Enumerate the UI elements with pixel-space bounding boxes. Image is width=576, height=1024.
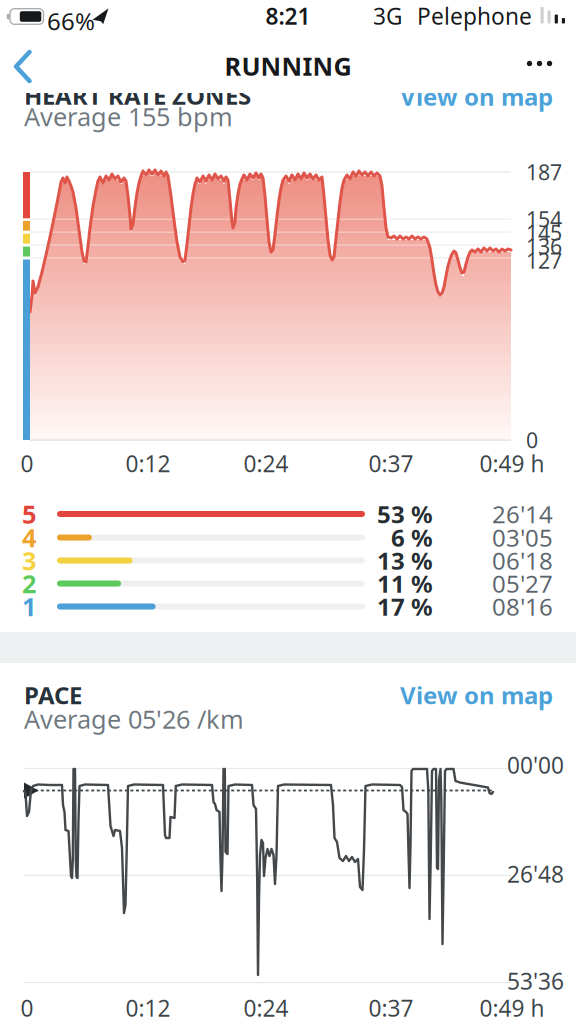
staticText: 26'48: [507, 859, 564, 889]
staticText: View on map: [400, 679, 553, 711]
staticText: 0: [526, 426, 538, 454]
staticText: 06'18: [492, 545, 553, 576]
staticText: 05'27: [492, 568, 553, 599]
staticText: 0:37: [368, 993, 413, 1023]
staticText: Average 155 bpm: [24, 100, 233, 133]
staticText: 4: [22, 521, 36, 554]
staticText: 154: [526, 205, 562, 233]
staticText: 13 %: [377, 545, 433, 576]
staticText: 0: [20, 993, 33, 1023]
staticText: 66%: [47, 5, 95, 37]
staticText: 3G: [373, 1, 403, 31]
staticText: 5: [22, 497, 36, 531]
staticText: 0:12: [125, 993, 170, 1023]
staticText: 53 %: [377, 498, 433, 530]
staticText: Average 05'26 /km: [24, 702, 244, 736]
staticText: 6 %: [391, 522, 433, 553]
staticText: 0:24: [243, 993, 288, 1023]
staticText: 0:37: [368, 448, 413, 478]
staticText: 1: [22, 590, 36, 623]
staticText: 53'36: [507, 966, 564, 996]
staticText: 136: [526, 232, 562, 260]
staticText: 187: [526, 158, 562, 186]
staticText: 0:49 h: [479, 448, 544, 478]
staticText: 11 %: [377, 568, 433, 599]
staticText: 0:12: [125, 448, 170, 478]
staticText: 3: [22, 544, 36, 577]
staticText: 17 %: [377, 591, 433, 622]
staticText: 127: [526, 246, 562, 275]
staticText: 8:21: [265, 1, 310, 31]
staticText: PACE: [24, 679, 82, 711]
staticText: HEART RATE ZONES: [24, 80, 251, 111]
staticText: 03'05: [492, 522, 553, 553]
staticText: RUNNING: [224, 49, 351, 83]
staticText: 00'00: [507, 750, 564, 780]
staticText: Pelephone: [417, 1, 532, 31]
staticText: 0:24: [243, 448, 288, 478]
staticText: 0: [20, 448, 33, 478]
staticText: View on map: [400, 81, 553, 112]
staticText: 2: [22, 567, 36, 600]
staticText: 26'14: [492, 498, 553, 530]
staticText: 08'16: [492, 591, 553, 622]
staticText: 145: [526, 218, 562, 247]
staticText: 0:49 h: [479, 993, 544, 1023]
